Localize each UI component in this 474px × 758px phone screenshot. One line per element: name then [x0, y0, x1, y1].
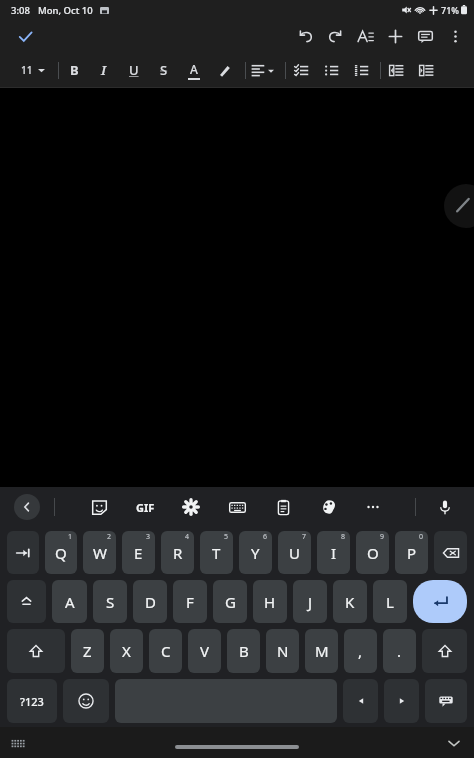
button[interactable]: Themes: [314, 492, 344, 522]
staticText: L: [386, 592, 394, 612]
button[interactable]: F: [173, 580, 207, 623]
button[interactable]: 11: [18, 59, 48, 81]
button[interactable]: ,: [344, 629, 377, 673]
button[interactable]: Alignment: [248, 63, 277, 78]
button[interactable]: M: [305, 629, 338, 673]
staticText: ?123: [20, 694, 44, 709]
button[interactable]: T: [200, 531, 233, 574]
button[interactable]: C: [149, 629, 182, 673]
button[interactable]: Q: [45, 531, 77, 574]
button[interactable]: Tab: [7, 531, 39, 574]
button[interactable]: Text formatting: [350, 21, 380, 51]
button[interactable]: Decrease indent: [381, 53, 411, 87]
button[interactable]: W: [83, 531, 116, 574]
button[interactable]: G: [213, 580, 247, 623]
staticText: Z: [83, 641, 92, 661]
button[interactable]: U: [278, 531, 311, 574]
button[interactable]: L: [373, 580, 407, 623]
button[interactable]: Switch keyboard: [425, 679, 467, 723]
staticText: 0: [419, 532, 424, 542]
staticText: B: [239, 641, 249, 661]
button[interactable]: Highlight: [209, 53, 239, 87]
button[interactable]: Comments: [410, 21, 440, 51]
button[interactable]: .: [383, 629, 416, 673]
staticText: N: [277, 641, 289, 661]
button[interactable]: Strikethrough: [149, 53, 179, 87]
button[interactable]: R: [161, 531, 194, 574]
button[interactable]: Undo: [290, 21, 320, 51]
button[interactable]: Settings: [176, 492, 206, 522]
staticText: F: [186, 592, 194, 612]
button[interactable]: Back: [14, 494, 40, 520]
button[interactable]: X: [110, 629, 143, 673]
button[interactable]: D: [133, 580, 167, 623]
staticText: 3:08: [11, 4, 30, 17]
staticText: U: [129, 61, 139, 79]
button[interactable]: S: [93, 580, 127, 623]
button[interactable]: Redo: [320, 21, 350, 51]
button[interactable]: Stickers: [84, 492, 114, 522]
staticText: X: [122, 641, 131, 661]
staticText: H: [264, 592, 276, 612]
button[interactable]: Move left: [343, 679, 378, 723]
button[interactable]: Voice input: [430, 492, 460, 522]
button[interactable]: Caps lock: [7, 580, 46, 623]
button[interactable]: Text color: [179, 53, 209, 87]
button[interactable]: More options: [440, 21, 470, 51]
button[interactable]: B: [227, 629, 260, 673]
button[interactable]: Bulleted list: [316, 53, 346, 87]
staticText: S: [106, 592, 115, 612]
staticText: Mon, Oct 10: [38, 4, 93, 17]
button[interactable]: Done: [10, 21, 40, 51]
button[interactable]: I: [317, 531, 350, 574]
button[interactable]: A: [52, 580, 87, 623]
button[interactable]: Keyboard modes: [222, 492, 252, 522]
staticText: B: [70, 61, 79, 79]
staticText: 1: [68, 532, 73, 542]
button[interactable]: Emoji: [63, 679, 109, 723]
button[interactable]: Close keyboard: [442, 731, 466, 755]
button[interactable]: V: [188, 629, 221, 673]
button[interactable]: Numbered list: [346, 53, 376, 87]
staticText: V: [200, 641, 210, 661]
button[interactable]: Underline: [119, 53, 149, 87]
button[interactable]: Edit: [444, 184, 474, 228]
staticText: P: [407, 543, 417, 563]
button[interactable]: Hide keyboard: [6, 731, 30, 755]
button[interactable]: Insert: [380, 21, 410, 51]
staticText: A: [65, 592, 75, 612]
staticText: T: [212, 543, 221, 563]
staticText: 9: [380, 532, 385, 542]
button[interactable]: Backspace: [434, 531, 467, 574]
button[interactable]: Checklist: [286, 53, 316, 87]
button[interactable]: E: [122, 531, 155, 574]
button[interactable]: Move right: [384, 679, 419, 723]
button[interactable]: Increase indent: [411, 53, 441, 87]
staticText: W: [93, 543, 107, 563]
button[interactable]: N: [266, 629, 299, 673]
staticText: Q: [55, 543, 67, 563]
button[interactable]: Shift: [7, 629, 65, 673]
button[interactable]: H: [253, 580, 287, 623]
button[interactable]: Z: [71, 629, 104, 673]
button[interactable]: Bold: [59, 53, 89, 87]
button[interactable]: K: [333, 580, 367, 623]
button[interactable]: O: [356, 531, 389, 574]
button[interactable]: Y: [239, 531, 272, 574]
button[interactable]: Italic: [89, 53, 119, 87]
staticText: 4: [185, 532, 190, 542]
button[interactable]: Enter: [413, 580, 467, 623]
staticText: I: [331, 543, 337, 563]
button[interactable]: Symbols: [7, 679, 57, 723]
staticText: M: [315, 641, 329, 661]
staticText: R: [173, 543, 183, 563]
button[interactable]: J: [293, 580, 327, 623]
staticText: S: [160, 61, 168, 79]
button[interactable]: Shift: [422, 629, 467, 673]
button[interactable]: P: [395, 531, 428, 574]
button[interactable]: Clipboard: [268, 492, 298, 522]
staticText: A: [190, 61, 198, 77]
button[interactable]: GIF: [130, 492, 160, 522]
button[interactable]: More: [358, 492, 388, 522]
